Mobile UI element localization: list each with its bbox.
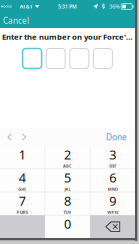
staticText: MNO bbox=[108, 186, 118, 192]
staticText: 6 bbox=[109, 169, 116, 186]
button[interactable]: 4 bbox=[0, 169, 45, 192]
button[interactable]: 7 bbox=[0, 192, 45, 215]
staticText: 4 bbox=[19, 169, 26, 186]
staticText: 2 bbox=[64, 146, 71, 163]
staticText: TUV bbox=[63, 209, 71, 215]
staticText: Enter the number on your Force's display bbox=[2, 31, 135, 42]
staticText: GHI bbox=[18, 186, 26, 192]
staticText: 7 bbox=[19, 192, 26, 209]
staticText: 5:31 PM bbox=[58, 3, 77, 10]
staticText: ABC bbox=[63, 163, 72, 169]
staticText: 3 bbox=[109, 146, 116, 163]
button[interactable]: Cancel bbox=[0, 12, 35, 29]
button[interactable]: 2 bbox=[45, 146, 90, 169]
button[interactable]: 9 bbox=[90, 192, 135, 215]
staticText: 0 bbox=[64, 215, 71, 232]
staticText: 1 bbox=[19, 146, 26, 163]
button[interactable]: Done bbox=[102, 128, 131, 146]
button[interactable]: 8 bbox=[45, 192, 90, 215]
staticText: JKL bbox=[64, 186, 70, 192]
staticText: 36% bbox=[109, 3, 119, 10]
staticText: 5 bbox=[64, 169, 71, 186]
button[interactable]: 0 bbox=[45, 215, 90, 238]
button[interactable]: Delete bbox=[90, 215, 135, 238]
button[interactable]: 3 bbox=[90, 146, 135, 169]
staticText: WXYZ bbox=[107, 209, 118, 215]
staticText: Cancel bbox=[3, 15, 29, 26]
staticText: Done bbox=[106, 131, 127, 143]
staticText: PQRS bbox=[17, 209, 28, 215]
button[interactable]: 6 bbox=[90, 169, 135, 192]
button[interactable]: Previous field bbox=[2, 129, 17, 145]
button[interactable]: 1 bbox=[0, 146, 45, 169]
staticText: 9 bbox=[109, 192, 116, 209]
button[interactable]: Next field bbox=[17, 129, 32, 145]
staticText: AT&T bbox=[20, 3, 33, 10]
button[interactable]: 5 bbox=[45, 169, 90, 192]
staticText: 8 bbox=[64, 192, 71, 209]
staticText: DEF bbox=[109, 163, 116, 169]
